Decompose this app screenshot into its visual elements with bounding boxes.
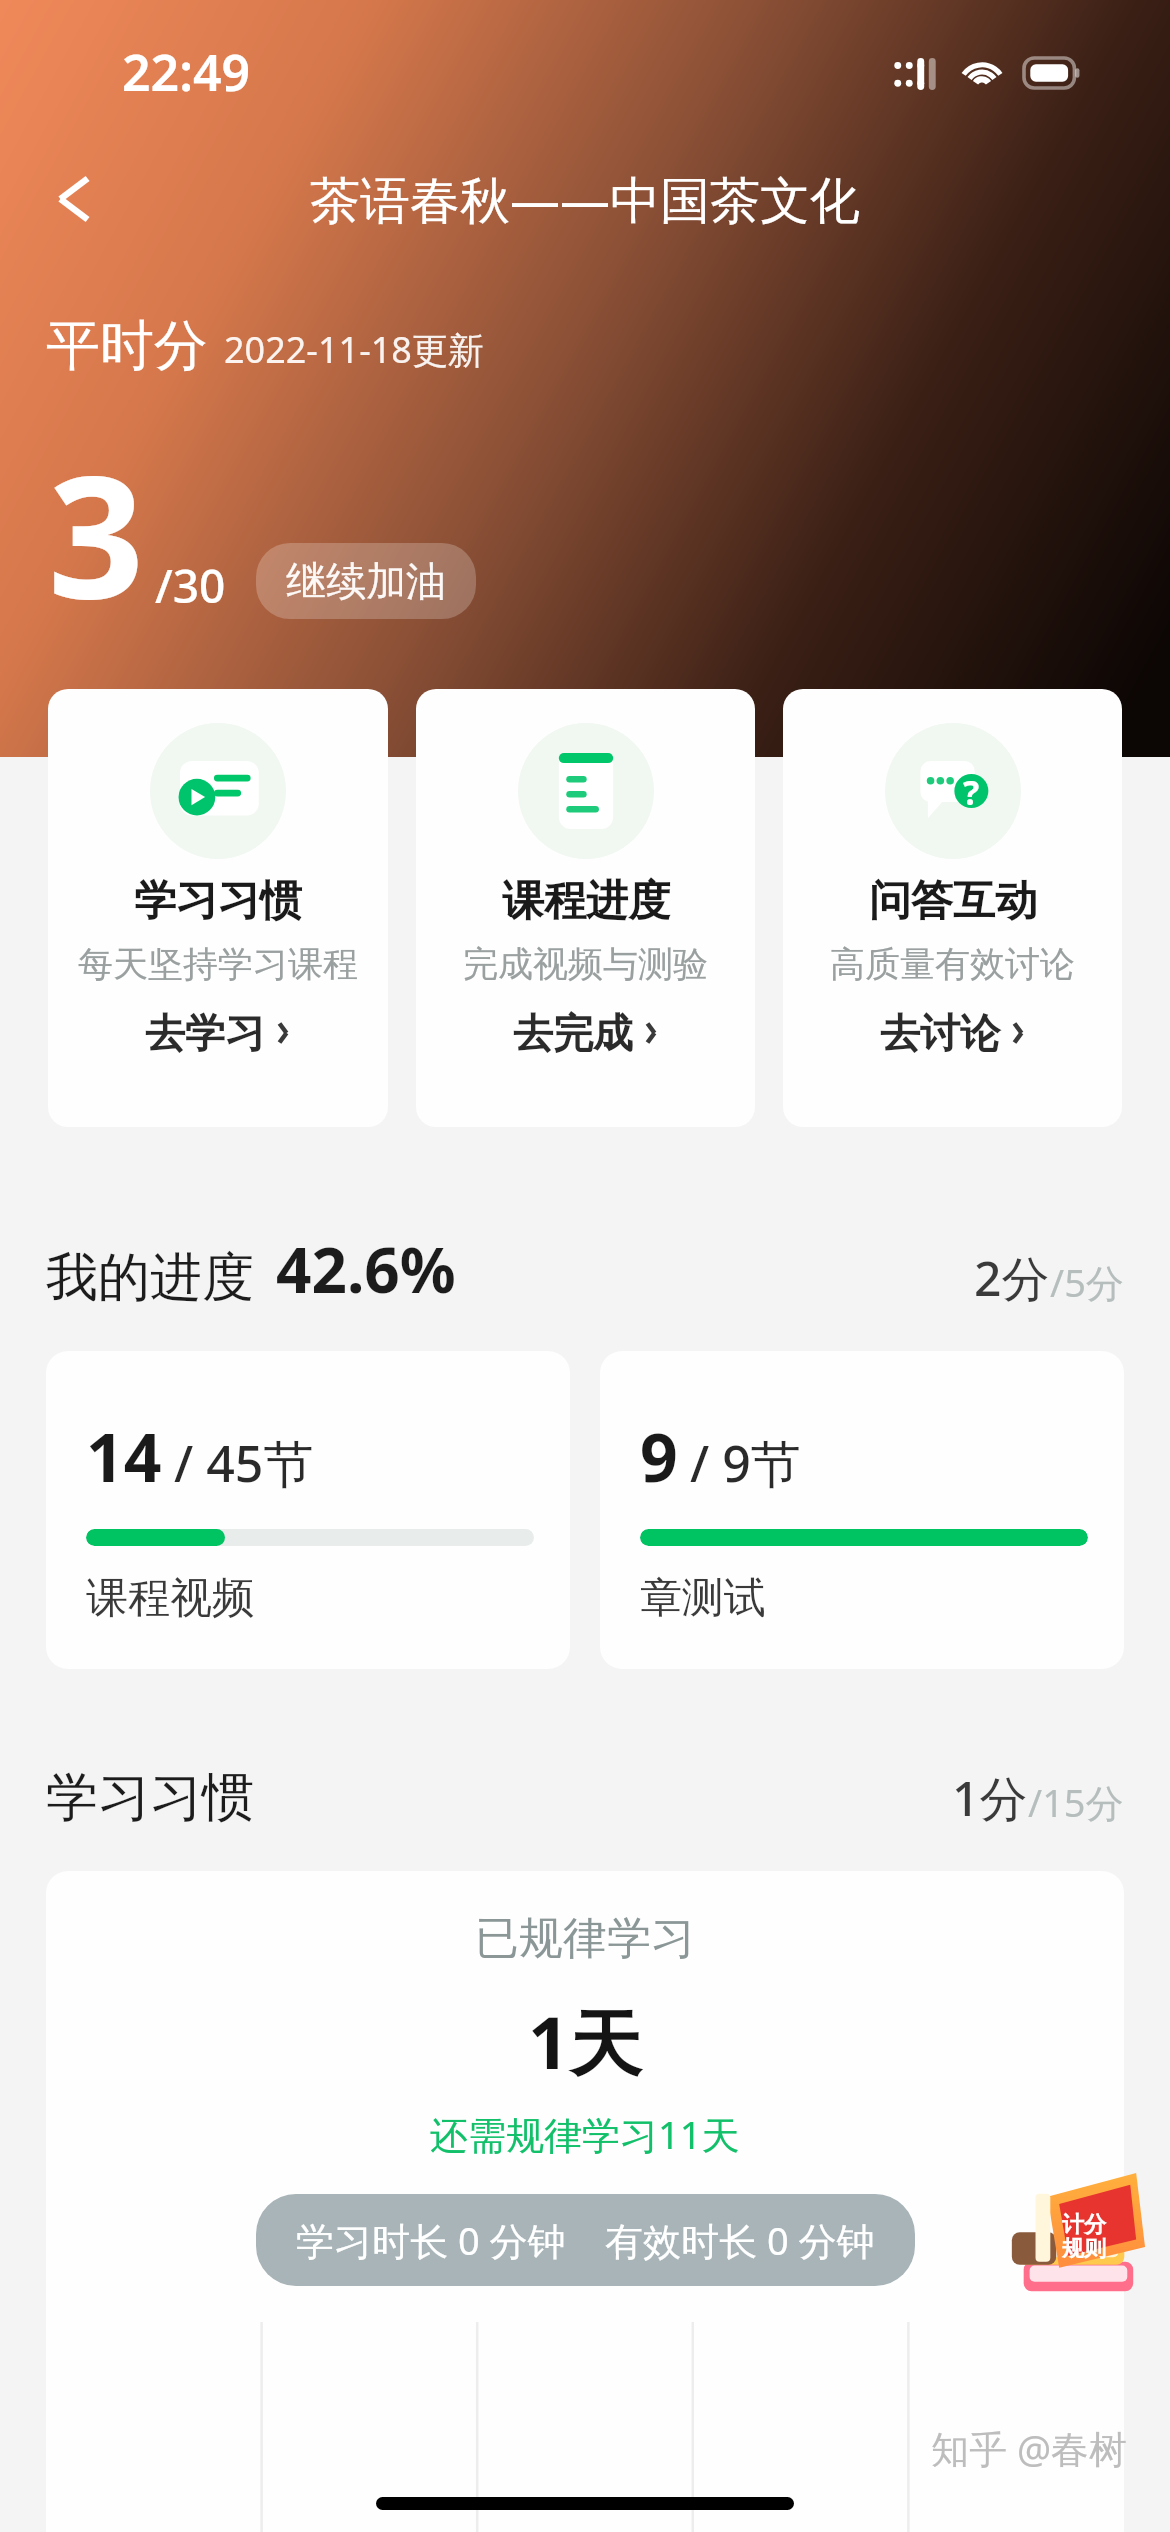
staticText: 课程视频 [86,1572,254,1625]
button[interactable]: 学习习惯 [48,689,388,1127]
staticText: ? [963,769,980,815]
staticText: 计分 规则 [1062,2211,1106,2262]
button[interactable]: 学习时长 0 分钟 有效时长 0 分钟 [256,2194,915,2286]
staticText: 2022-11-18更新 [224,325,484,374]
button[interactable]: 计分规则 [1000,2170,1148,2318]
staticText: /5分 [1050,1256,1124,1308]
staticText: 已规律学习 [475,1911,695,1966]
staticText: 茶语春秋——中国茶文化 [310,165,860,233]
button[interactable]: ? [783,689,1122,1127]
button[interactable]: 9 [600,1351,1124,1669]
staticText: 去学习 [145,1008,265,1058]
staticText: 1分 [952,1765,1028,1831]
staticText: 学习习惯 [46,1765,254,1831]
button[interactable]: 14 [46,1351,570,1669]
staticText: 9 [640,1411,678,1501]
staticText: /30 [155,554,226,617]
staticText: 章测试 [640,1572,766,1625]
staticText: /15分 [1028,1776,1124,1828]
button[interactable]: 已规律学习 [46,1871,1124,2532]
staticText: 高质量有效讨论 [830,942,1075,986]
staticText: 1天 [528,1992,642,2090]
staticText: 每天坚持学习课程 [78,942,358,986]
staticText: / 45节 [174,1429,314,1497]
staticText: 学习时长 0 分钟 有效时长 0 分钟 [296,2214,875,2266]
staticText: 2分 [974,1245,1050,1311]
staticText: 完成视频与测验 [463,942,708,986]
button[interactable]: 继续加油 [256,543,476,619]
staticText: 学习习惯 [134,875,302,928]
staticText: 问答互动 [869,875,1037,928]
staticText: 去完成 [513,1008,633,1058]
button[interactable]: 课程进度 [416,689,755,1127]
staticText: 22:49 [122,38,251,106]
staticText: 3 [48,418,145,647]
staticText: 平时分 [46,312,208,380]
staticText: 去讨论 [880,1008,1000,1058]
staticText: 知乎 @春树 [931,2422,1128,2474]
button[interactable]: Back [28,153,120,245]
staticText: 课程进度 [502,875,670,928]
staticText: 42.6% [276,1227,456,1311]
staticText: 还需规律学习11天 [430,2108,740,2160]
staticText: 继续加油 [286,556,446,606]
staticText: 我的进度 [46,1245,254,1311]
staticText: 14 [86,1411,162,1501]
staticText: / 9节 [690,1429,801,1497]
